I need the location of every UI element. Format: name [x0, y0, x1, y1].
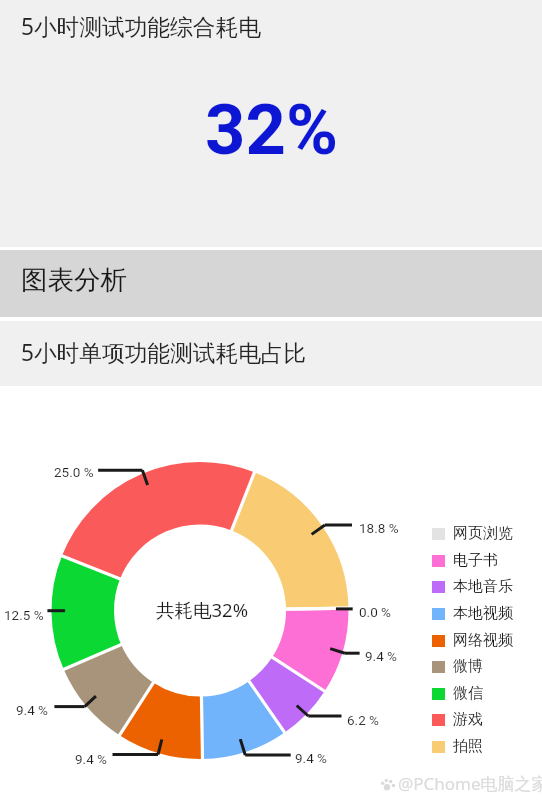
staticText: 网络视频 [453, 631, 513, 650]
button[interactable]: 网络视频 [432, 627, 540, 654]
staticText: 5小时单项功能测试耗电占比 [21, 337, 307, 368]
button[interactable]: 游戏 [432, 706, 540, 733]
button[interactable]: 电子书 [432, 547, 540, 574]
staticText: 9.4 % [75, 751, 107, 767]
button[interactable]: 微博 [432, 653, 540, 680]
staticText: 网页浏览 [453, 524, 513, 543]
staticText: 6.2 % [347, 712, 379, 728]
staticText: 9.4 % [16, 702, 48, 718]
staticText: 电子书 [453, 551, 498, 570]
staticText: 拍照 [453, 737, 483, 756]
staticText: 25.0 % [54, 464, 94, 480]
staticText: 9.4 % [295, 750, 327, 766]
staticText: 9.4 % [365, 648, 397, 664]
staticText: 共耗电32% [156, 597, 249, 622]
staticText: 0.0 % [359, 604, 391, 620]
staticText: 图表分析 [21, 263, 127, 296]
staticText: 微博 [453, 657, 483, 676]
button[interactable]: 本地视频 [432, 600, 540, 627]
button[interactable]: 网页浏览 [432, 520, 540, 547]
staticText: 本地音乐 [453, 577, 513, 596]
staticText: 游戏 [453, 710, 483, 729]
staticText: @PChome电脑之家 [398, 772, 542, 795]
staticText: 12.5 % [4, 607, 44, 623]
button[interactable]: 本地音乐 [432, 573, 540, 600]
button[interactable]: 微信 [432, 680, 540, 707]
staticText: 本地视频 [453, 604, 513, 623]
button[interactable]: 拍照 [432, 733, 540, 760]
staticText: 5小时测试功能综合耗电 [21, 11, 261, 42]
staticText: 18.8 % [359, 520, 399, 536]
staticText: 32% [205, 89, 338, 172]
staticText: 微信 [453, 684, 483, 703]
